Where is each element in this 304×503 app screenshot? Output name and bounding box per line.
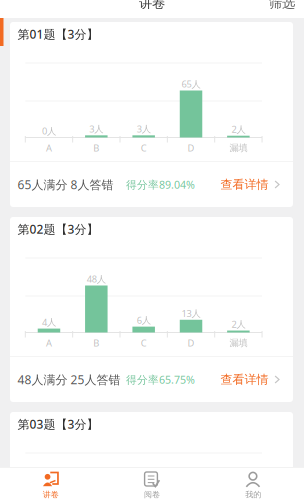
staticText: 第02题【3分】 xyxy=(17,221,98,237)
staticText: 2人 xyxy=(231,123,245,135)
staticText: 48人 xyxy=(87,273,106,285)
button[interactable]: 讲卷 xyxy=(0,468,101,503)
staticText: 我的 xyxy=(245,490,261,499)
staticText: 查看详情 xyxy=(220,372,268,387)
staticText: 3人 xyxy=(89,123,103,135)
staticText: B xyxy=(93,337,99,349)
staticText: 65人 xyxy=(181,78,200,90)
staticText: A xyxy=(46,337,52,349)
button[interactable]: 我的 xyxy=(203,468,304,503)
staticText: 第01题【3分】 xyxy=(17,26,98,42)
staticText: 阅卷 xyxy=(144,490,160,499)
staticText: D xyxy=(187,337,194,349)
staticText: 筛选 xyxy=(269,0,295,11)
staticText: 讲卷 xyxy=(139,0,165,11)
staticText: 4人 xyxy=(42,316,56,328)
staticText: C xyxy=(141,337,147,349)
staticText: C xyxy=(141,142,147,154)
staticText: D xyxy=(187,142,194,154)
staticText: 漏填 xyxy=(229,142,247,154)
staticText: 第03题【3分】 xyxy=(17,416,98,432)
staticText: A xyxy=(46,142,52,154)
staticText: 6人 xyxy=(137,314,151,326)
staticText: 52人 xyxy=(134,468,153,480)
staticText: 得分率89.04% xyxy=(126,177,195,192)
staticText: 48人满分 25人答错 xyxy=(17,371,120,387)
staticText: 3人 xyxy=(137,123,151,135)
staticText: 讲卷 xyxy=(43,490,59,499)
staticText: B xyxy=(93,142,99,154)
staticText: 2人 xyxy=(231,318,245,330)
button[interactable]: 阅卷 xyxy=(101,468,203,503)
staticText: 0人 xyxy=(42,125,56,137)
staticText: 查看详情 xyxy=(220,177,268,192)
staticText: 漏填 xyxy=(229,337,247,349)
button[interactable]: 查看详情 xyxy=(210,169,293,200)
staticText: 65人满分 8人答错 xyxy=(17,176,113,192)
staticText: 13人 xyxy=(181,307,200,319)
staticText: 得分率65.75% xyxy=(126,372,195,387)
button[interactable]: 筛选 xyxy=(269,0,304,14)
button[interactable]: 查看详情 xyxy=(210,364,293,395)
